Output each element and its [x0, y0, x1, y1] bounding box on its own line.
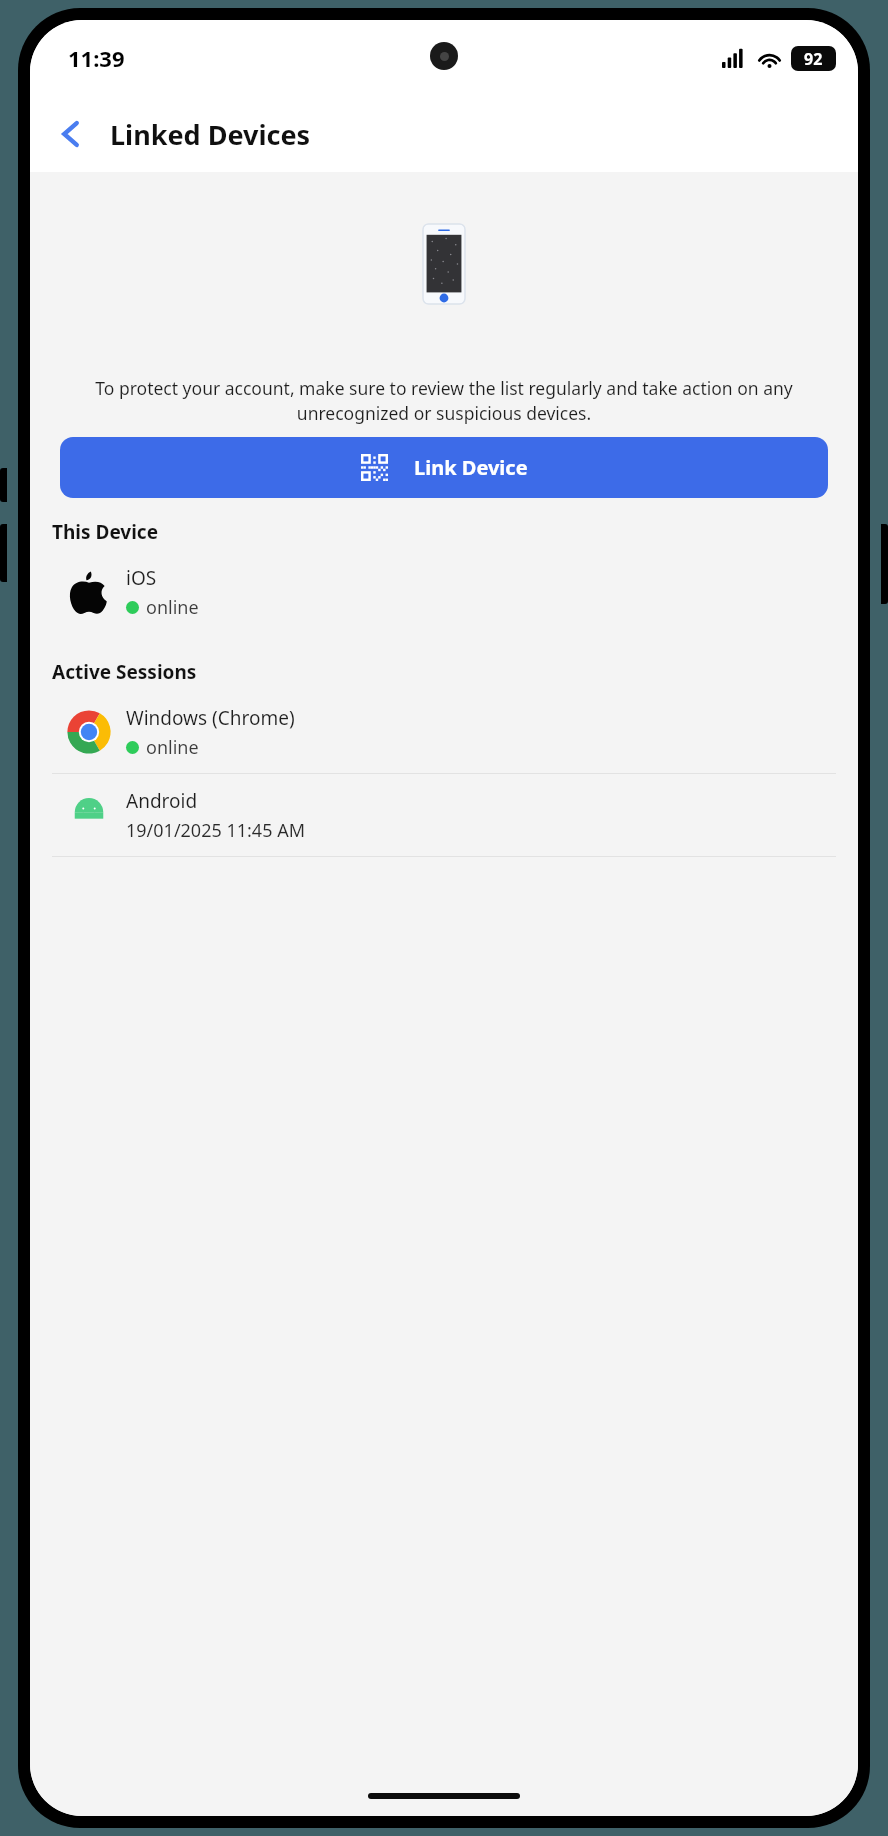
staticText: 92: [804, 48, 823, 70]
staticText: Link Device: [414, 454, 528, 481]
staticText: online: [146, 595, 199, 620]
staticText: iOS: [126, 565, 157, 591]
button[interactable]: Windows (Chrome): [30, 691, 858, 773]
staticText: 19/01/2025 11:45 AM: [126, 818, 305, 843]
button[interactable]: Back: [44, 107, 98, 161]
staticText: Linked Devices: [110, 116, 311, 153]
staticText: 11:39: [68, 43, 125, 73]
staticText: Active Sessions: [52, 659, 197, 685]
button[interactable]: Android: [30, 774, 858, 856]
staticText: online: [146, 735, 199, 760]
button[interactable]: iOS: [30, 551, 858, 633]
button[interactable]: Link Device: [60, 437, 828, 498]
staticText: This Device: [52, 519, 159, 545]
staticText: Windows (Chrome): [126, 705, 295, 731]
staticText: To protect your account, make sure to re…: [64, 376, 824, 425]
staticText: Android: [126, 788, 198, 814]
